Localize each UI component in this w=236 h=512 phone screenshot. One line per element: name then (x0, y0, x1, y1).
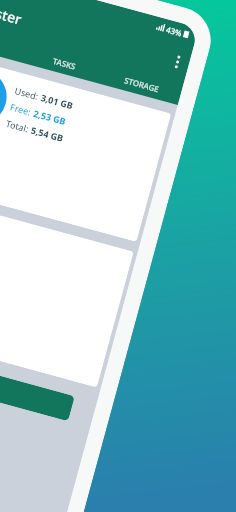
button[interactable]: More options (162, 47, 192, 76)
staticText: Booster (0, 0, 24, 29)
button[interactable]: JUNK (0, 21, 29, 63)
staticText: 3,01 GB (40, 91, 75, 111)
staticText: Total: (5, 117, 30, 134)
button[interactable] (0, 191, 134, 388)
staticText: 43% (165, 24, 183, 38)
button[interactable] (0, 340, 75, 421)
staticText: 2,53 GB (32, 107, 67, 127)
staticText: Free: (9, 100, 32, 117)
staticText: 5,54 GB (30, 124, 65, 144)
staticText: TASKS (52, 55, 78, 72)
staticText: STORAGE (123, 74, 161, 94)
button[interactable]: TASKS (23, 42, 106, 84)
button[interactable]: STORAGE (101, 63, 184, 105)
button[interactable]: Used: (0, 53, 171, 242)
staticText: Used: (14, 84, 40, 102)
